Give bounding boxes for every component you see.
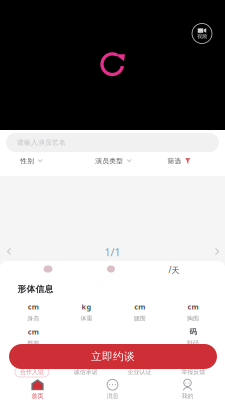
staticText: 演员类型 — [95, 157, 123, 165]
staticText: 消息 — [106, 392, 118, 400]
button[interactable]: 重新加载 — [98, 50, 126, 78]
staticText: 立即约谈 — [91, 350, 135, 363]
staticText: 身高 — [27, 315, 39, 322]
button[interactable]: 演员类型 — [89, 152, 138, 170]
staticText: cm — [28, 327, 39, 337]
staticText: 臀围 — [27, 340, 39, 347]
button[interactable]: 性别 — [14, 152, 49, 170]
staticText: 码 — [189, 327, 196, 336]
staticText: 我的 — [181, 392, 193, 400]
staticText: 企业认证 — [127, 368, 151, 376]
staticText: 胸围 — [187, 315, 199, 322]
staticText: 请输入演员艺名 — [17, 138, 66, 147]
staticText: 腰围 — [134, 315, 146, 322]
button[interactable]: 上一页 — [0, 241, 19, 261]
staticText: 首页 — [31, 392, 43, 400]
button[interactable]: 视频通话 — [192, 23, 212, 43]
staticText: cm — [134, 302, 145, 312]
staticText: 合作入驻 — [20, 368, 44, 376]
button[interactable]: 下一页 — [207, 241, 225, 261]
staticText: kg — [81, 302, 91, 312]
button[interactable]: 立即约谈 — [9, 344, 217, 369]
button[interactable]: 首页 — [0, 379, 75, 400]
button[interactable]: 筛选 — [161, 152, 196, 170]
button[interactable]: 请输入演员艺名 — [6, 133, 219, 152]
staticText: 筛选 — [167, 157, 181, 165]
staticText: 体重 — [80, 315, 92, 322]
staticText — [85, 339, 87, 348]
staticText: 形体信息 — [17, 283, 53, 294]
staticText: 视频 — [197, 33, 207, 39]
staticText: 举报反馈 — [181, 368, 205, 376]
staticText: 1/1 — [104, 245, 120, 259]
button[interactable]: 消息 — [75, 379, 150, 400]
staticText: cm — [187, 302, 198, 312]
staticText: 性别 — [20, 157, 34, 165]
staticText: /天 — [168, 265, 179, 275]
button[interactable]: 我的 — [150, 379, 225, 400]
staticText: 诚信承诺 — [74, 368, 98, 376]
staticText — [139, 339, 141, 348]
staticText: 鞋码 — [187, 339, 199, 347]
staticText: cm — [28, 302, 39, 312]
